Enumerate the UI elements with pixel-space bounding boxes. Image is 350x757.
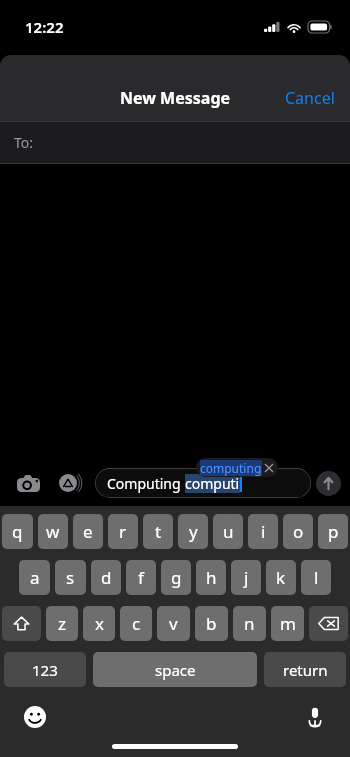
staticText: Cancel: [285, 87, 335, 109]
staticText: l: [314, 566, 319, 589]
staticText: c: [132, 612, 141, 635]
button[interactable]: f: [126, 560, 156, 595]
button[interactable]: z: [46, 606, 78, 641]
button[interactable]: n: [233, 606, 266, 641]
staticText: return: [283, 660, 328, 680]
button[interactable]: u: [213, 514, 243, 549]
button[interactable]: Emoji: [22, 704, 48, 730]
button[interactable]: d: [91, 560, 121, 595]
button[interactable]: q: [2, 514, 33, 549]
staticText: u: [223, 520, 234, 543]
button[interactable]: t: [143, 514, 173, 549]
button[interactable]: o: [283, 514, 313, 549]
button[interactable]: i: [248, 514, 278, 549]
button[interactable]: Dictation: [302, 704, 328, 730]
staticText: v: [169, 612, 178, 635]
button[interactable]: space: [93, 652, 257, 687]
staticText: z: [58, 612, 66, 635]
staticText: Computing: [107, 474, 185, 493]
staticText: a: [30, 566, 40, 589]
button[interactable]: k: [266, 560, 296, 595]
staticText: g: [171, 566, 182, 589]
staticText: 12:22: [25, 17, 64, 37]
button[interactable]: g: [161, 560, 191, 595]
button[interactable]: p: [318, 514, 348, 549]
button[interactable]: Send: [313, 468, 343, 498]
button[interactable]: l: [301, 560, 331, 595]
button[interactable]: computing: [196, 458, 278, 477]
button[interactable]: x: [83, 606, 115, 641]
button[interactable]: return: [264, 652, 346, 687]
button[interactable]: b: [195, 606, 228, 641]
button[interactable]: Shift: [2, 606, 41, 641]
staticText: computi: [185, 474, 240, 493]
staticText: k: [276, 566, 286, 589]
button[interactable]: c: [120, 606, 152, 641]
button[interactable]: Cancel: [277, 81, 343, 115]
button[interactable]: h: [196, 560, 226, 595]
staticText: t: [155, 520, 162, 543]
button[interactable]: Take photo: [13, 468, 43, 498]
button[interactable]: w: [38, 514, 68, 549]
staticText: r: [119, 520, 127, 543]
button[interactable]: Backspace: [309, 606, 348, 641]
staticText: e: [83, 520, 93, 543]
staticText: New Message: [120, 87, 231, 109]
button[interactable]: v: [157, 606, 190, 641]
staticText: h: [206, 566, 217, 589]
staticText: n: [244, 612, 255, 635]
staticText: x: [95, 612, 104, 635]
button[interactable]: To:: [0, 122, 350, 163]
staticText: computing: [200, 460, 262, 476]
staticText: q: [12, 520, 23, 543]
staticText: d: [101, 566, 112, 589]
staticText: To:: [14, 133, 34, 152]
staticText: f: [138, 566, 144, 589]
staticText: o: [293, 520, 304, 543]
button[interactable]: e: [73, 514, 103, 549]
button[interactable]: y: [178, 514, 208, 549]
button[interactable]: r: [108, 514, 138, 549]
staticText: j: [244, 566, 249, 589]
button[interactable]: Computing: [95, 468, 311, 498]
button[interactable]: Apps: [55, 467, 87, 499]
staticText: p: [328, 520, 339, 543]
staticText: w: [46, 520, 60, 543]
button[interactable]: a: [19, 560, 50, 595]
staticText: b: [206, 612, 217, 635]
staticText: i: [261, 520, 266, 543]
staticText: m: [280, 612, 296, 635]
button[interactable]: j: [231, 560, 261, 595]
staticText: s: [66, 566, 75, 589]
button[interactable]: m: [271, 606, 304, 641]
button[interactable]: s: [55, 560, 86, 595]
staticText: y: [189, 520, 198, 543]
staticText: 123: [32, 660, 58, 680]
button[interactable]: 123: [4, 652, 86, 687]
staticText: space: [155, 660, 196, 680]
